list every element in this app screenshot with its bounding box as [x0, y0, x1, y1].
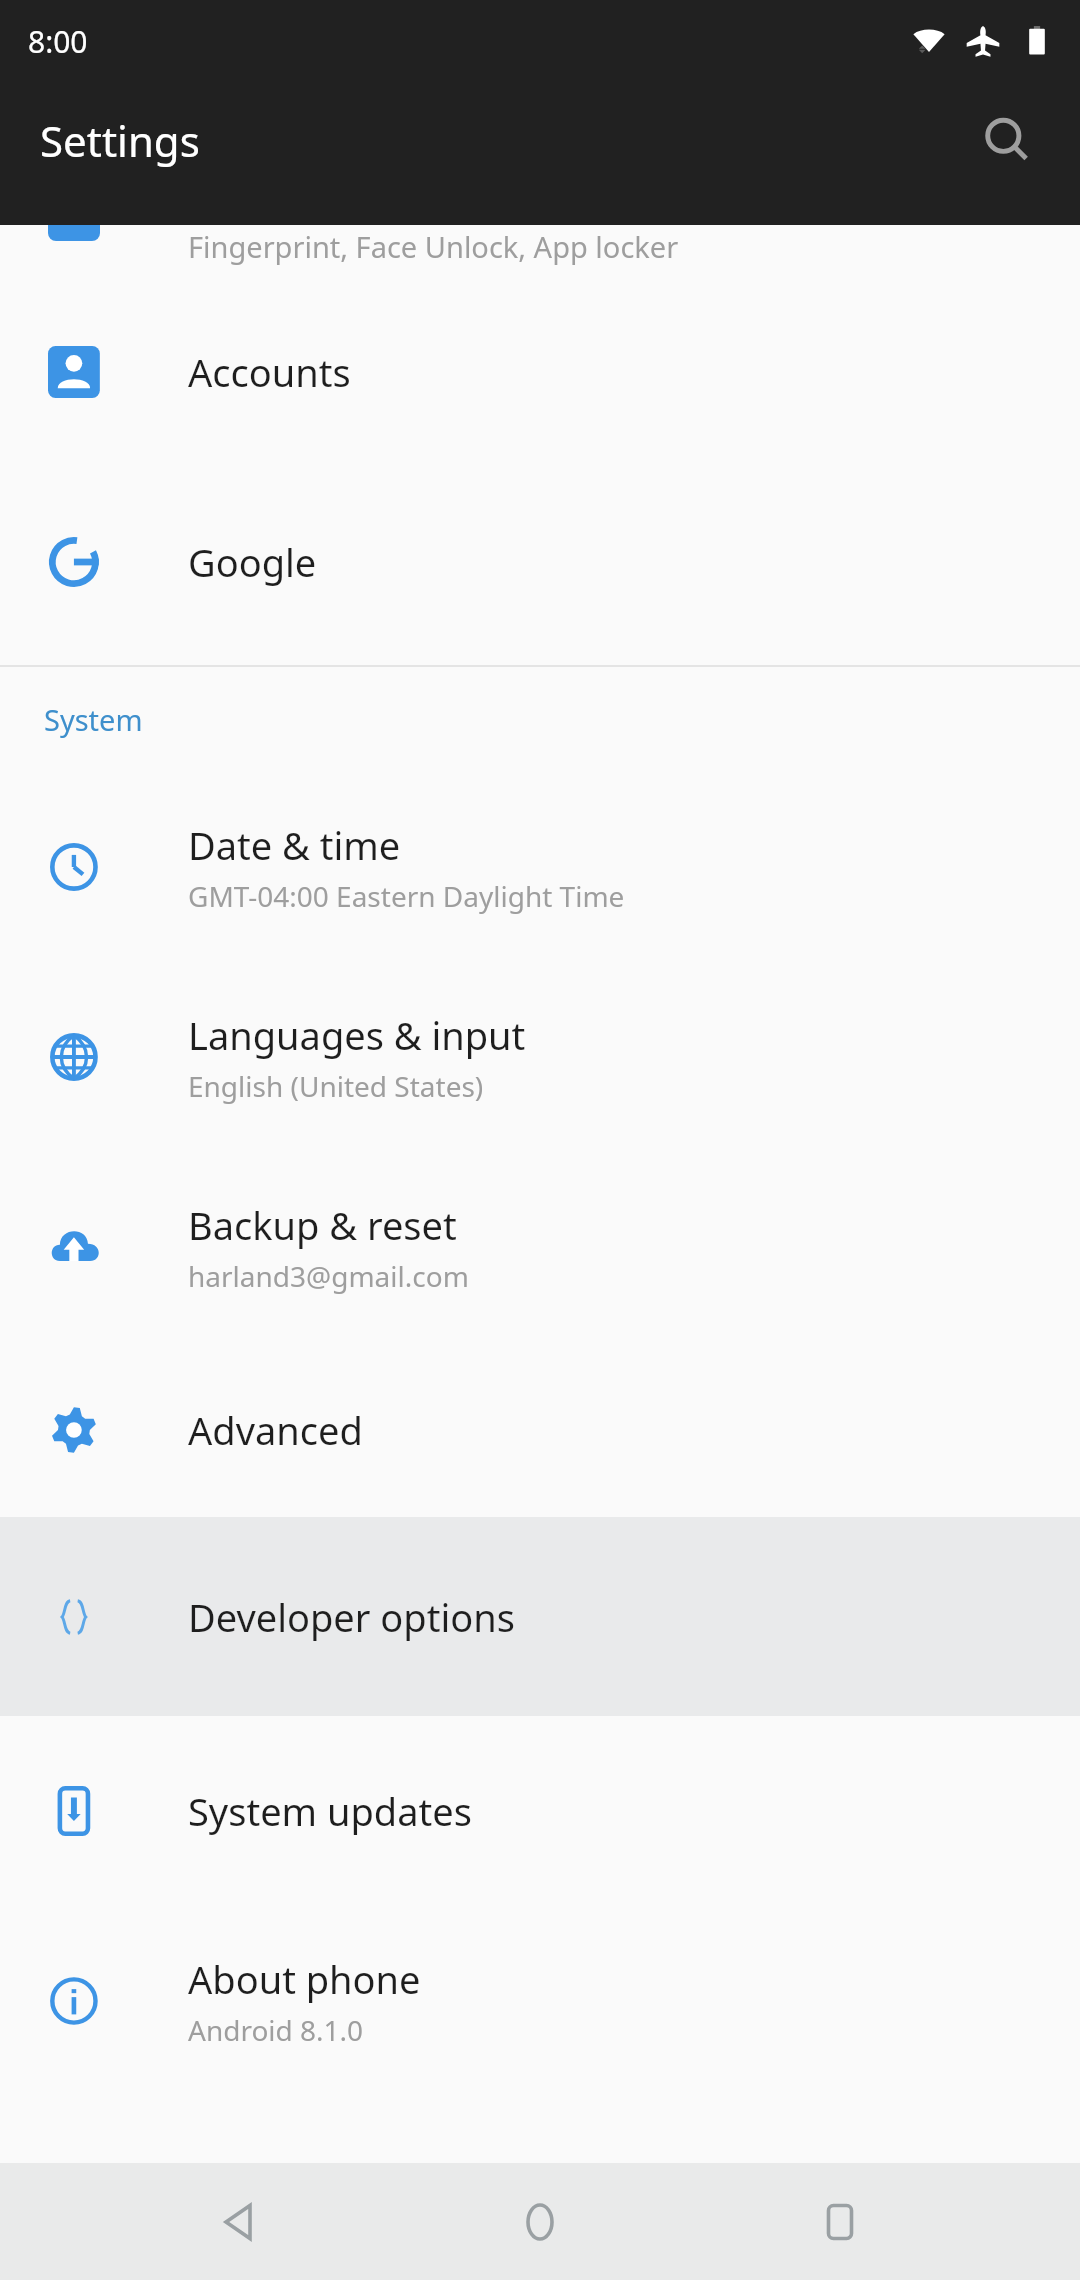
- staticText: About phone: [188, 1953, 421, 2005]
- staticText: Languages & input: [188, 1009, 526, 1061]
- button[interactable]: Developer options: [0, 1517, 1080, 1716]
- staticText: Developer options: [188, 1591, 515, 1643]
- staticText: System updates: [188, 1785, 472, 1837]
- staticText: System: [44, 700, 143, 739]
- button[interactable]: Advanced: [0, 1342, 1080, 1517]
- staticText: GMT-04:00 Eastern Daylight Time: [188, 877, 625, 915]
- staticText: Android 8.1.0: [188, 2011, 364, 2049]
- button[interactable]: Languages & input: [0, 962, 1080, 1152]
- staticText: Settings: [40, 112, 200, 169]
- staticText: 8:00: [28, 21, 88, 62]
- staticText: English (United States): [188, 1067, 484, 1105]
- button[interactable]: Date & time: [0, 772, 1080, 962]
- button[interactable]: Google: [0, 467, 1080, 657]
- button[interactable]: Home: [480, 2163, 600, 2280]
- button[interactable]: Search: [962, 95, 1054, 187]
- staticText: harland3@gmail.com: [188, 1257, 469, 1295]
- button[interactable]: Accounts: [0, 277, 1080, 467]
- button[interactable]: Recent apps: [780, 2163, 900, 2280]
- staticText: Google: [188, 536, 317, 588]
- button[interactable]: Backup & reset: [0, 1152, 1080, 1342]
- button[interactable]: About phone: [0, 1906, 1080, 2096]
- staticText: Advanced: [188, 1404, 363, 1456]
- staticText: Date & time: [188, 819, 401, 871]
- button[interactable]: Fingerprint, Face Unlock, App locker: [0, 225, 1080, 277]
- staticText: Fingerprint, Face Unlock, App locker: [188, 227, 679, 266]
- staticText: Backup & reset: [188, 1199, 457, 1251]
- staticText: Accounts: [188, 346, 351, 398]
- button[interactable]: Back: [180, 2163, 300, 2280]
- button[interactable]: System updates: [0, 1716, 1080, 1906]
